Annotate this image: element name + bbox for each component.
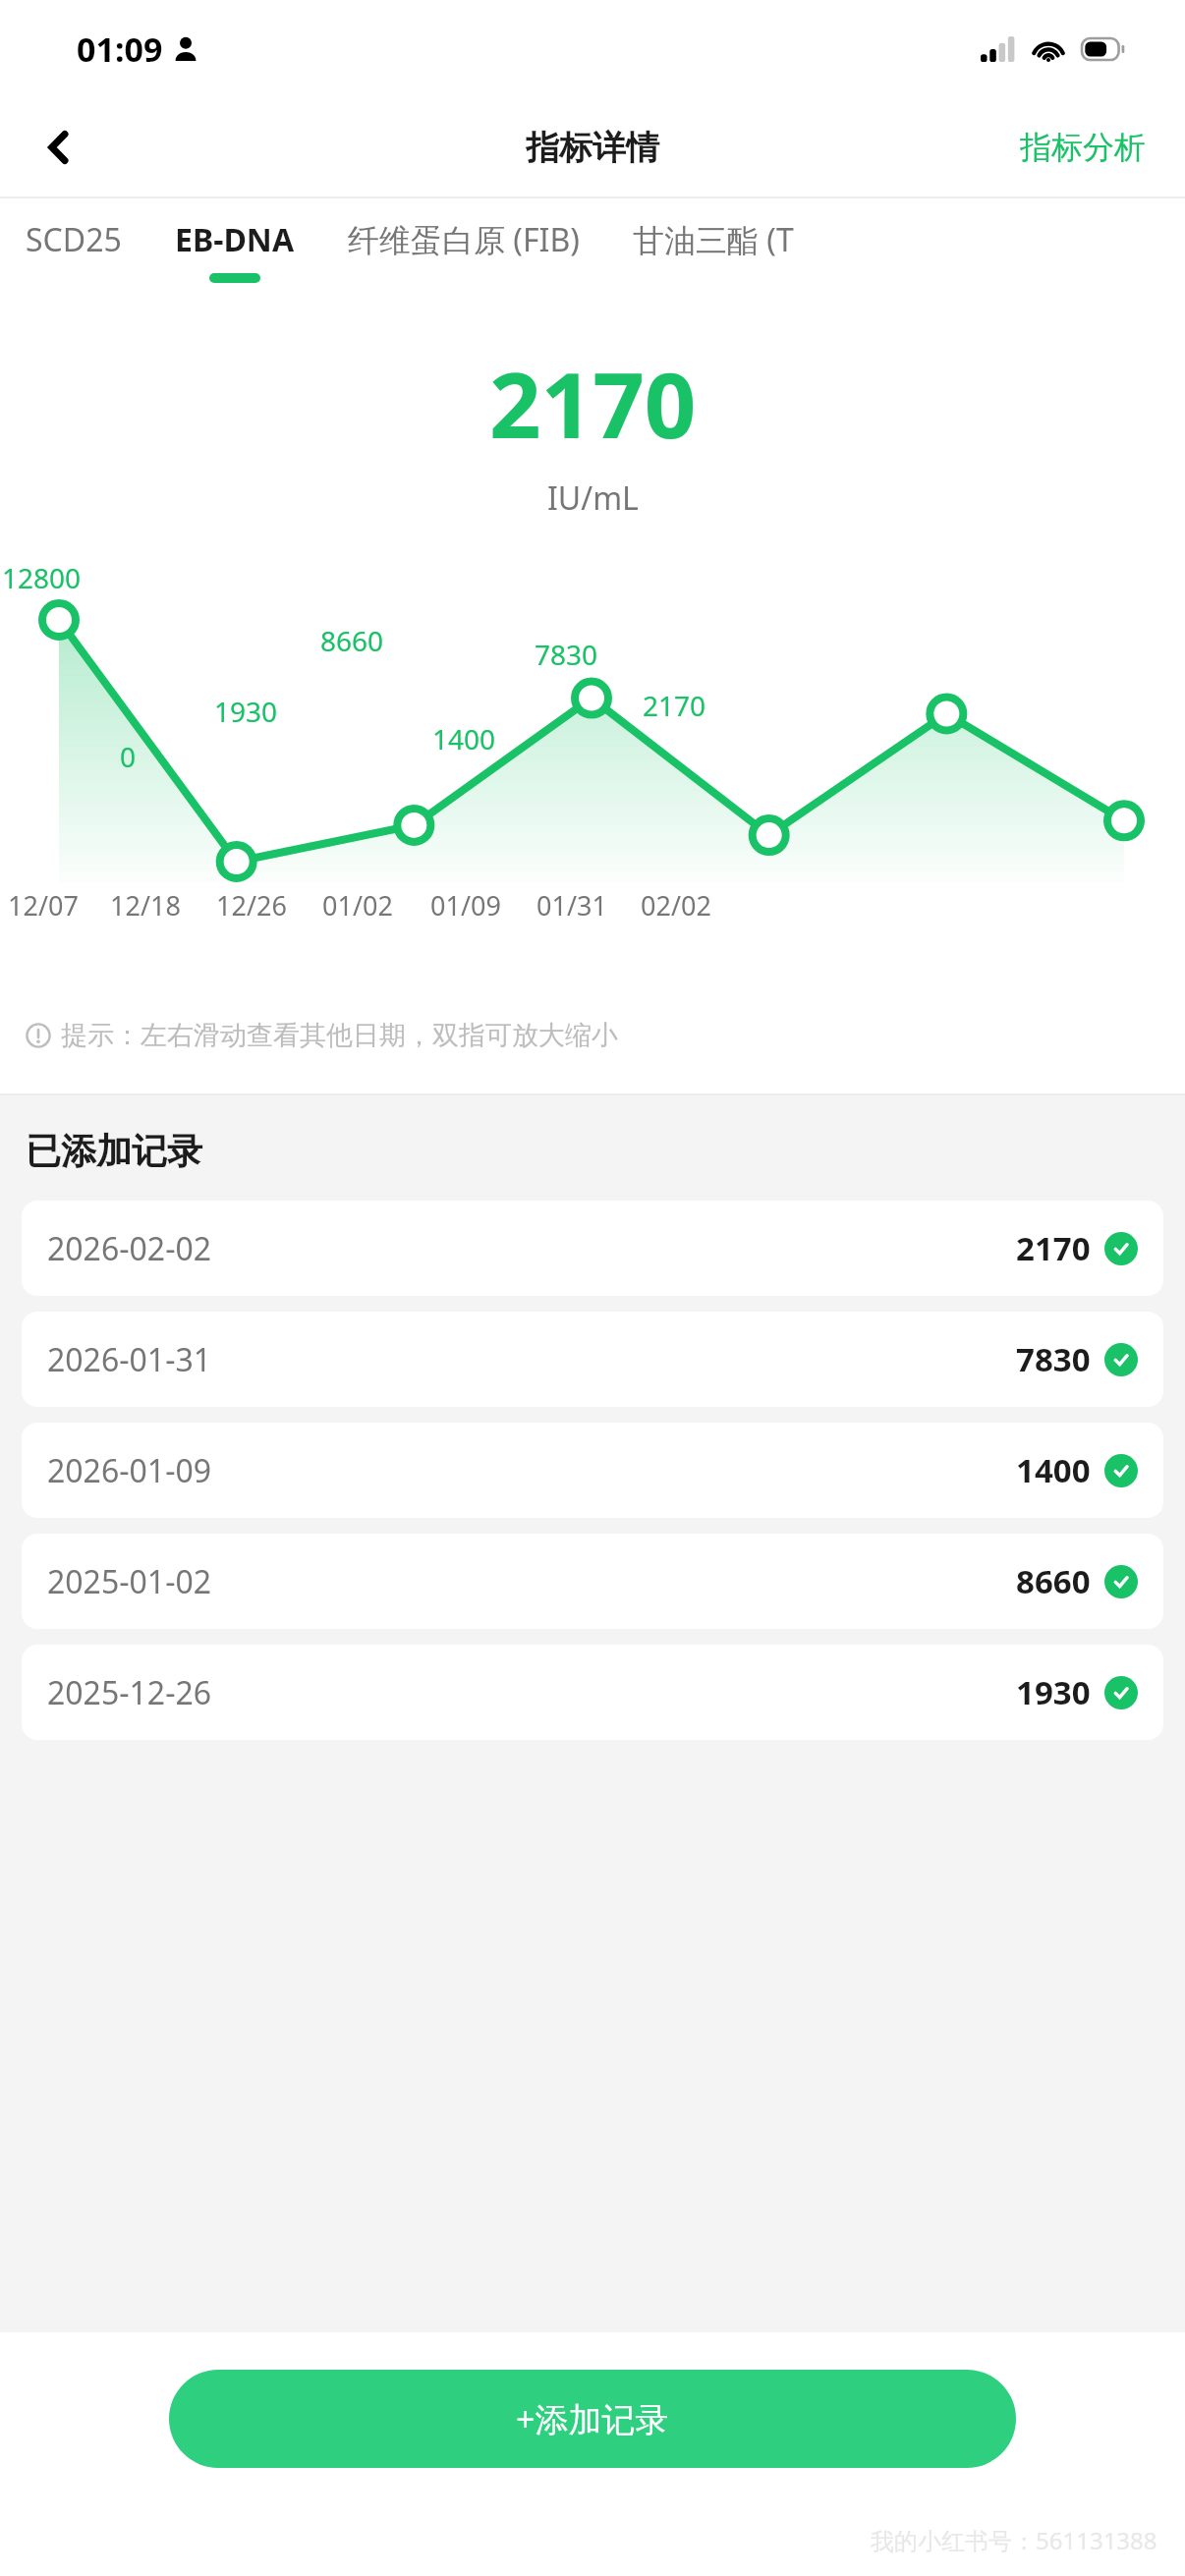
button[interactable]: 2026-01-09: [22, 1423, 1163, 1518]
staticText: 2025-01-02: [47, 1560, 212, 1603]
staticText: 8660: [320, 622, 384, 659]
staticText: 2026-02-02: [47, 1227, 212, 1270]
staticText: 1400: [1016, 1448, 1091, 1492]
staticText: 甘油三酯 (T: [633, 218, 794, 261]
staticText: 01/31: [536, 887, 607, 924]
staticText: 0: [120, 738, 137, 775]
staticText: +添加记录: [516, 2396, 669, 2441]
staticText: 2170: [1016, 1226, 1091, 1270]
staticText: 01/09: [430, 887, 501, 924]
staticText: 2170: [643, 687, 706, 724]
button[interactable]: 2025-12-26: [22, 1645, 1163, 1740]
staticText: 2026-01-31: [47, 1338, 212, 1381]
button[interactable]: +添加记录: [169, 2370, 1016, 2468]
button[interactable]: 2025-01-02: [22, 1534, 1163, 1629]
button[interactable]: SCD25: [22, 214, 126, 287]
staticText: 2026-01-09: [47, 1449, 212, 1492]
staticText: IU/mL: [547, 476, 639, 520]
staticText: 7830: [1016, 1337, 1091, 1381]
staticText: 已添加记录: [26, 1129, 202, 1173]
staticText: 2025-12-26: [47, 1671, 212, 1714]
staticText: 我的小红书号：561131388: [871, 2524, 1157, 2556]
staticText: EB-DNA: [175, 218, 295, 261]
button[interactable]: 指标分析: [1010, 116, 1156, 179]
staticText: 1400: [432, 720, 496, 757]
staticText: 提示：左右滑动查看其他日期，双指可放大缩小: [61, 1019, 618, 1052]
button[interactable]: 纤维蛋白原 (FIB): [344, 214, 584, 287]
staticText: 01/02: [322, 887, 393, 924]
staticText: 2170: [489, 342, 697, 465]
staticText: 7830: [535, 636, 598, 673]
button[interactable]: Back: [22, 110, 96, 185]
staticText: SCD25: [26, 218, 122, 261]
button[interactable]: 2026-01-31: [22, 1312, 1163, 1407]
button[interactable]: 甘油三酯 (T: [629, 214, 798, 287]
staticText: 02/02: [641, 887, 711, 924]
staticText: 12/18: [110, 887, 181, 924]
button[interactable]: EB-DNA: [171, 214, 299, 287]
staticText: 12/07: [8, 887, 79, 924]
staticText: 纤维蛋白原 (FIB): [348, 218, 580, 261]
staticText: 1930: [1016, 1670, 1091, 1714]
staticText: 8660: [1016, 1559, 1091, 1603]
button[interactable]: 2026-02-02: [22, 1201, 1163, 1296]
staticText: 指标详情: [526, 127, 659, 169]
staticText: 12/26: [216, 887, 287, 924]
staticText: 12800: [2, 559, 82, 596]
staticText: 1930: [214, 693, 278, 730]
staticText: 01:09: [77, 27, 163, 72]
staticText: 指标分析: [1020, 128, 1146, 167]
